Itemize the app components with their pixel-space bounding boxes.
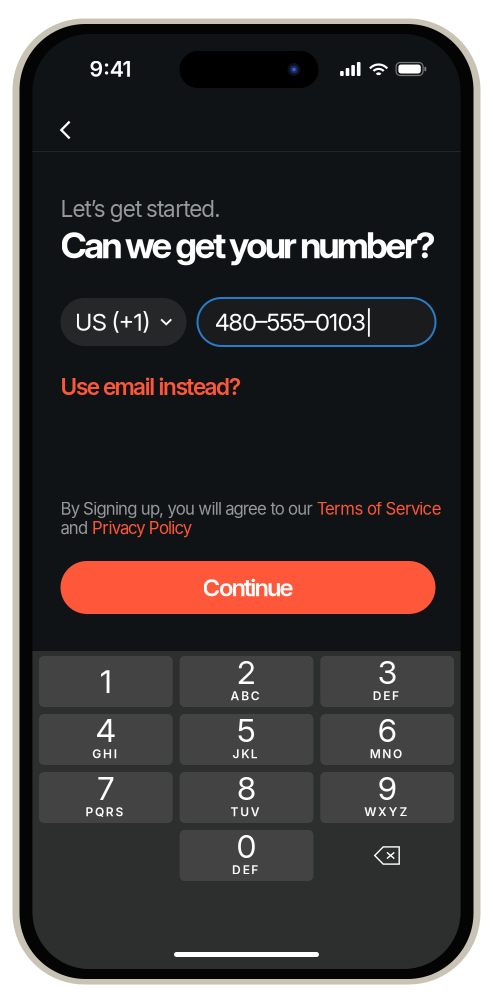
button[interactable]: 7: [39, 772, 173, 823]
button[interactable]: 0: [180, 830, 313, 881]
button[interactable]: 480–555–0103|: [197, 298, 435, 346]
staticText: 9:41: [89, 56, 131, 82]
button[interactable]: 1: [39, 656, 173, 707]
staticText: 2: [237, 653, 256, 692]
staticText: 0: [236, 827, 256, 866]
staticText: MNO: [370, 747, 407, 761]
staticText: 5: [237, 711, 256, 750]
staticText: 4: [96, 711, 116, 750]
staticText: Use email instead?: [60, 373, 241, 400]
button[interactable]: 3: [320, 656, 454, 707]
staticText: US (+1): [75, 307, 150, 336]
staticText: JKL: [232, 747, 262, 761]
staticText: TUV: [230, 805, 264, 819]
button[interactable]: Continue: [60, 561, 435, 614]
staticText: Let’s get started.: [60, 195, 220, 222]
staticText: GHI: [92, 747, 121, 761]
staticText: and: [60, 518, 92, 538]
staticText: 8: [237, 769, 256, 808]
staticText: Continue: [203, 573, 293, 602]
staticText: 9: [378, 769, 397, 808]
staticText: 1: [100, 662, 112, 701]
staticText: Can we get your number?: [60, 223, 435, 267]
staticText: 6: [378, 711, 397, 750]
button[interactable]: 5: [180, 714, 313, 765]
staticText: By Signing up, you will agree to our: [60, 499, 317, 519]
button[interactable]: 6: [320, 714, 454, 765]
button[interactable]: 8: [180, 772, 313, 823]
button[interactable]: Terms of Service: [317, 499, 442, 519]
staticText: 3: [378, 653, 397, 692]
staticText: DEF: [232, 863, 263, 877]
staticText: 7: [97, 769, 114, 808]
staticText: WXYZ: [364, 805, 412, 819]
button[interactable]: Use email instead?: [60, 373, 241, 400]
staticText: PQRS: [85, 805, 128, 819]
staticText: Privacy Policy: [92, 518, 192, 538]
button[interactable]: Privacy Policy: [92, 518, 192, 538]
button[interactable]: US (+1): [60, 298, 186, 346]
staticText: Terms of Service: [317, 499, 442, 519]
staticText: DEF: [373, 689, 404, 703]
staticText: 480–555–0103|: [214, 307, 373, 336]
button[interactable]: 9: [320, 772, 454, 823]
staticText: ABC: [230, 689, 264, 703]
button[interactable]: Back: [43, 108, 87, 152]
button[interactable]: 4: [39, 714, 173, 765]
button[interactable]: 2: [180, 656, 313, 707]
button[interactable]: Delete: [320, 830, 454, 881]
